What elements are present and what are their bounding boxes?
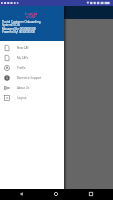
button[interactable]: Biometric Support [0,73,64,83]
staticText: Managed By: 0000000000 [2,27,36,31]
staticText: Profile [17,66,26,70]
staticText: System(TCOS) [2,23,21,27]
staticText: Logout [17,96,27,100]
staticText: Powered By: 0000000000 [2,30,35,34]
staticText: eCAF [26,14,36,19]
staticText: My CAFs [17,56,29,60]
staticText: Biometric Support [17,76,42,80]
button[interactable]: Logout [0,93,64,103]
staticText: About Us [17,86,30,90]
button[interactable]: Profile [0,63,64,73]
button[interactable]: My CAFs [0,53,64,63]
staticText: Lumia [25,11,38,16]
button[interactable]: New CAF [0,43,64,53]
staticText: Timtel Customer Onboarding [2,20,41,24]
staticText: New CAF [17,46,29,50]
button[interactable]: About Us [0,83,64,93]
